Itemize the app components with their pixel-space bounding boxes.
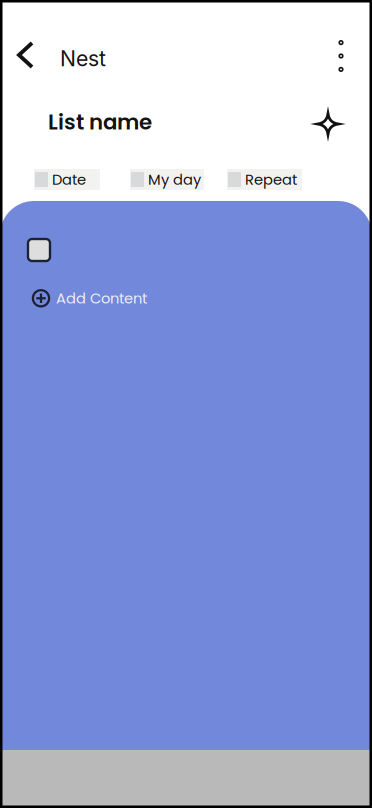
button[interactable]: Add Content <box>0 261 372 308</box>
staticText: Repeat <box>245 169 297 190</box>
button[interactable]: More options <box>326 34 356 76</box>
staticText: Add Content <box>56 288 147 308</box>
button[interactable]: Magic suggestions <box>310 103 346 141</box>
staticText: Nest <box>60 46 106 71</box>
button[interactable]: My day <box>130 169 204 190</box>
staticText: My day <box>148 169 201 190</box>
staticText: List name <box>48 107 152 137</box>
button[interactable]: Repeat <box>227 169 302 190</box>
button[interactable]: Back <box>17 35 50 75</box>
staticText: Date <box>52 169 86 190</box>
button[interactable]: Date <box>34 169 100 190</box>
button[interactable]: Mark complete <box>28 239 50 261</box>
